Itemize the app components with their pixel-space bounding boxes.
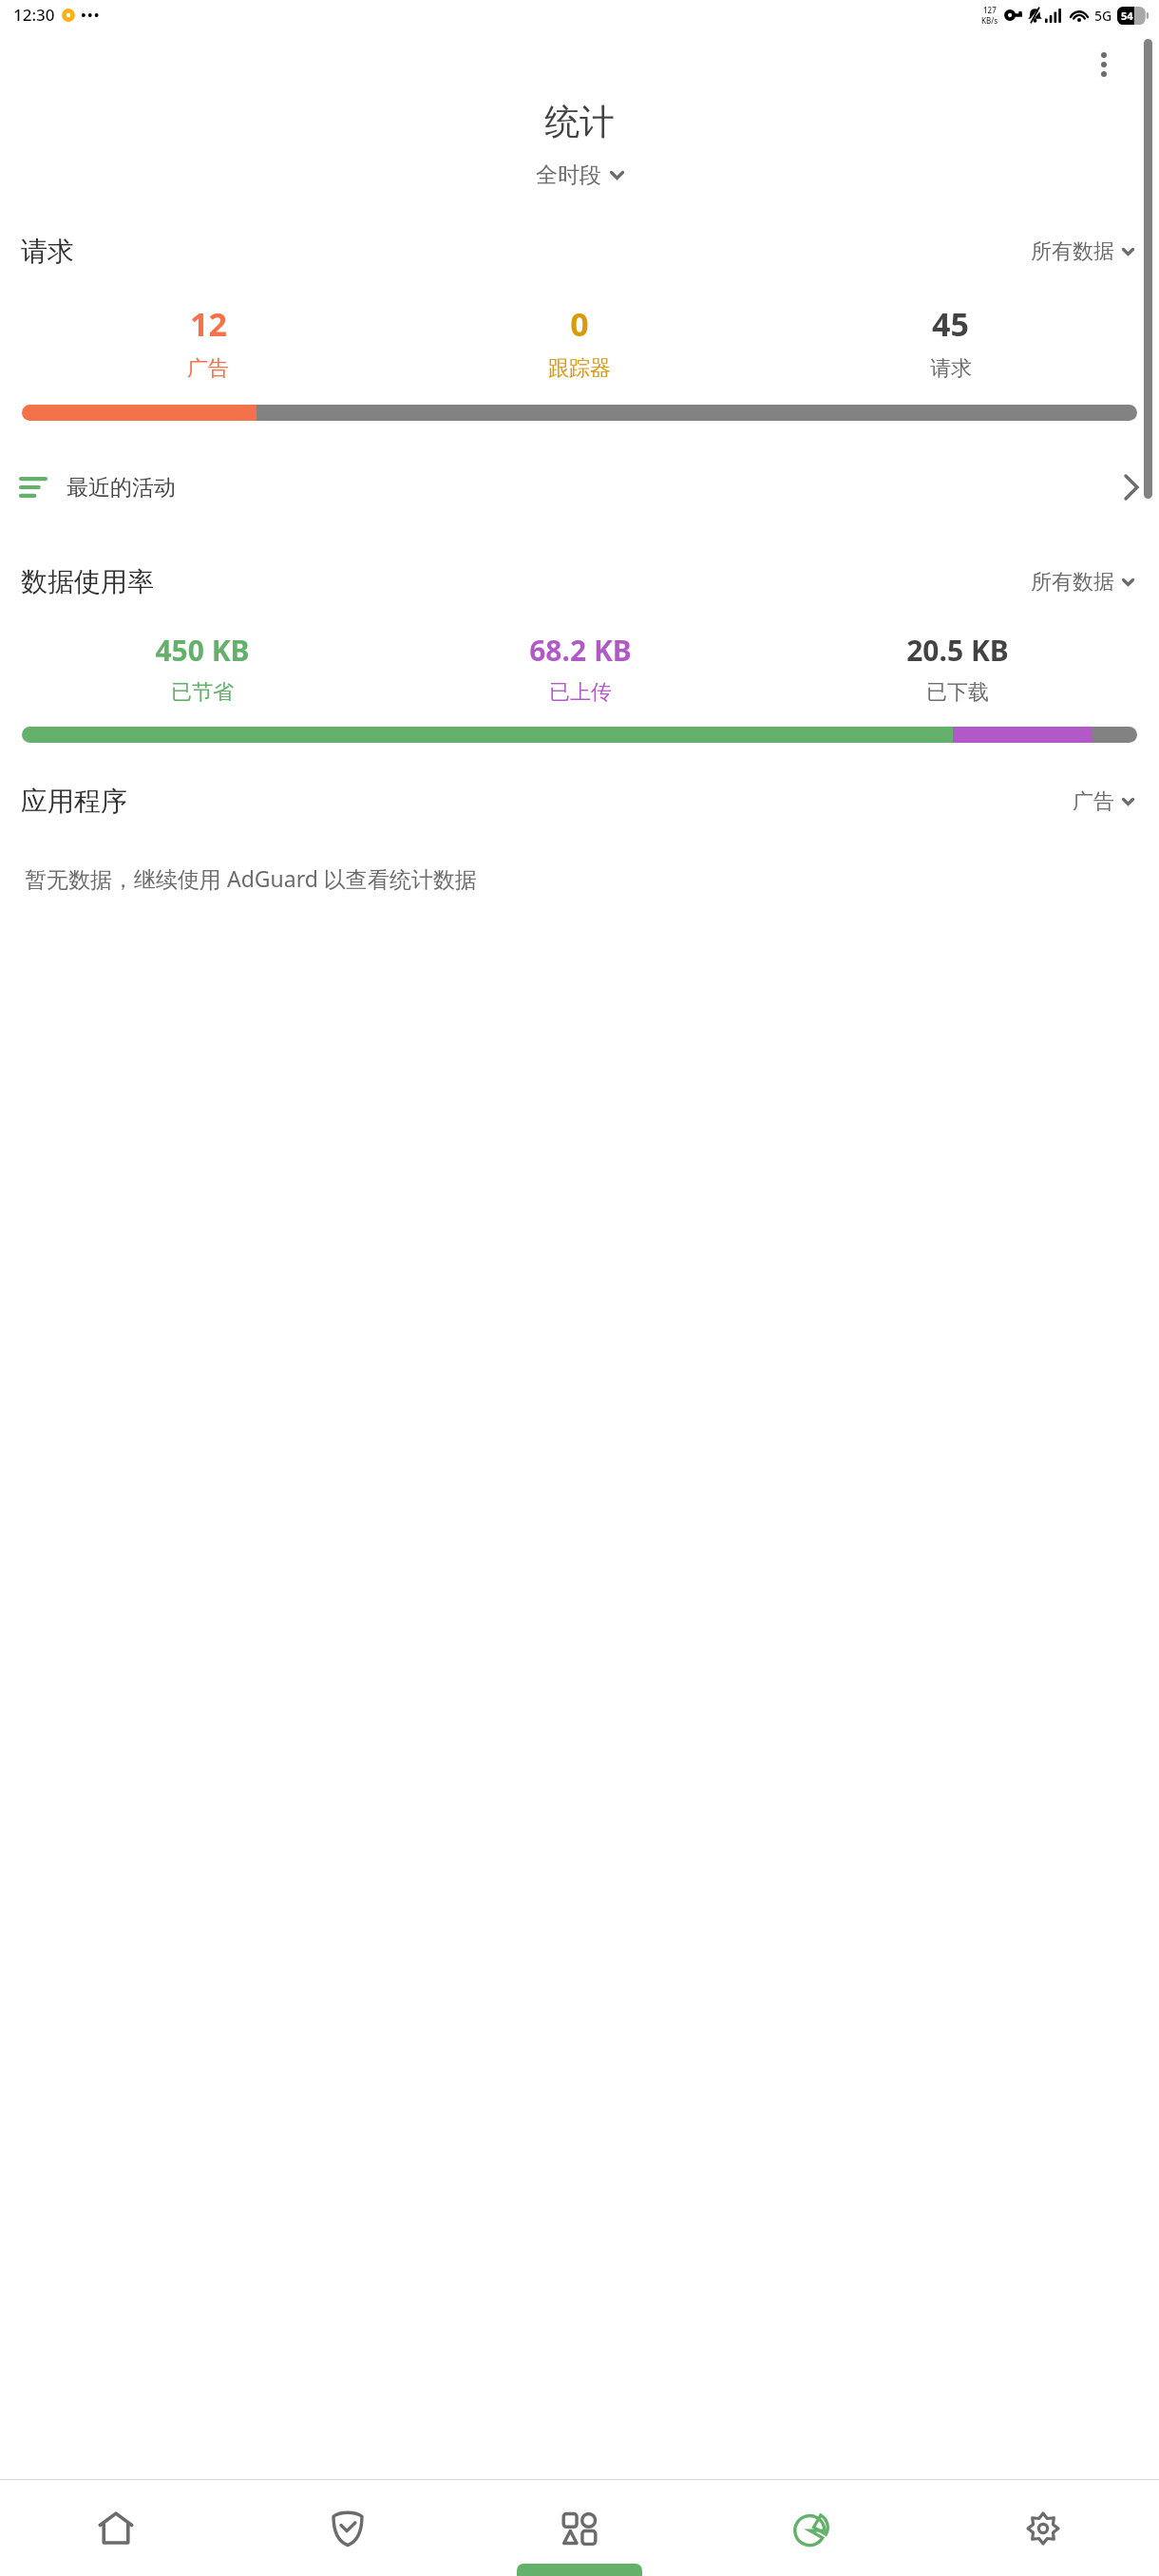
staticText: 请求 — [930, 355, 972, 382]
button[interactable]: Protection — [232, 2480, 464, 2576]
staticText: 12:30 — [13, 4, 55, 26]
staticText: 数据使用率 — [21, 565, 154, 598]
staticText: 所有数据 — [1031, 569, 1114, 596]
staticText: 12 — [190, 302, 227, 346]
button[interactable]: Home — [0, 2480, 232, 2576]
staticText: 450 KB — [155, 631, 250, 670]
staticText: 已上传 — [549, 679, 612, 706]
staticText: 0 — [570, 302, 589, 346]
button[interactable]: More options — [1081, 42, 1127, 87]
staticText: 暂无数据，继续使用 AdGuard 以查看统计数据 — [25, 863, 1121, 893]
staticText: 所有数据 — [1031, 238, 1114, 265]
staticText: 127 — [983, 5, 997, 15]
staticText: KB/s — [981, 15, 998, 26]
staticText: 全时段 — [536, 161, 601, 189]
button[interactable]: 45 — [765, 302, 1136, 382]
button[interactable]: Apps — [464, 2480, 695, 2576]
button[interactable]: 最近的活动 — [0, 457, 1159, 518]
button[interactable]: Statistics — [695, 2480, 927, 2576]
staticText: 54 — [1121, 9, 1133, 23]
button[interactable]: 12 — [23, 302, 393, 382]
button[interactable]: 所有数据 — [1031, 238, 1134, 265]
button[interactable]: 全时段 — [0, 161, 1159, 189]
staticText: 广告 — [1073, 788, 1114, 815]
staticText: 跟踪器 — [548, 355, 611, 382]
button[interactable]: 450 KB — [13, 631, 391, 706]
button[interactable]: 20.5 KB — [769, 631, 1146, 706]
staticText: 5G — [1094, 7, 1112, 25]
button[interactable]: 0 — [393, 302, 765, 382]
staticText: 应用程序 — [21, 785, 127, 818]
staticText: 68.2 KB — [529, 631, 632, 670]
button[interactable]: 所有数据 — [1031, 569, 1134, 596]
button[interactable]: 68.2 KB — [391, 631, 769, 706]
staticText: 已节省 — [171, 679, 234, 706]
staticText: 已下载 — [926, 679, 989, 706]
staticText: 请求 — [21, 235, 74, 268]
staticText: 45 — [932, 302, 969, 346]
staticText: 20.5 KB — [906, 631, 1009, 670]
staticText: 最近的活动 — [66, 474, 176, 502]
staticText: 广告 — [187, 355, 229, 382]
button[interactable]: 广告 — [1073, 788, 1134, 815]
button[interactable]: Settings — [927, 2480, 1159, 2576]
staticText: 统计 — [0, 100, 1159, 144]
